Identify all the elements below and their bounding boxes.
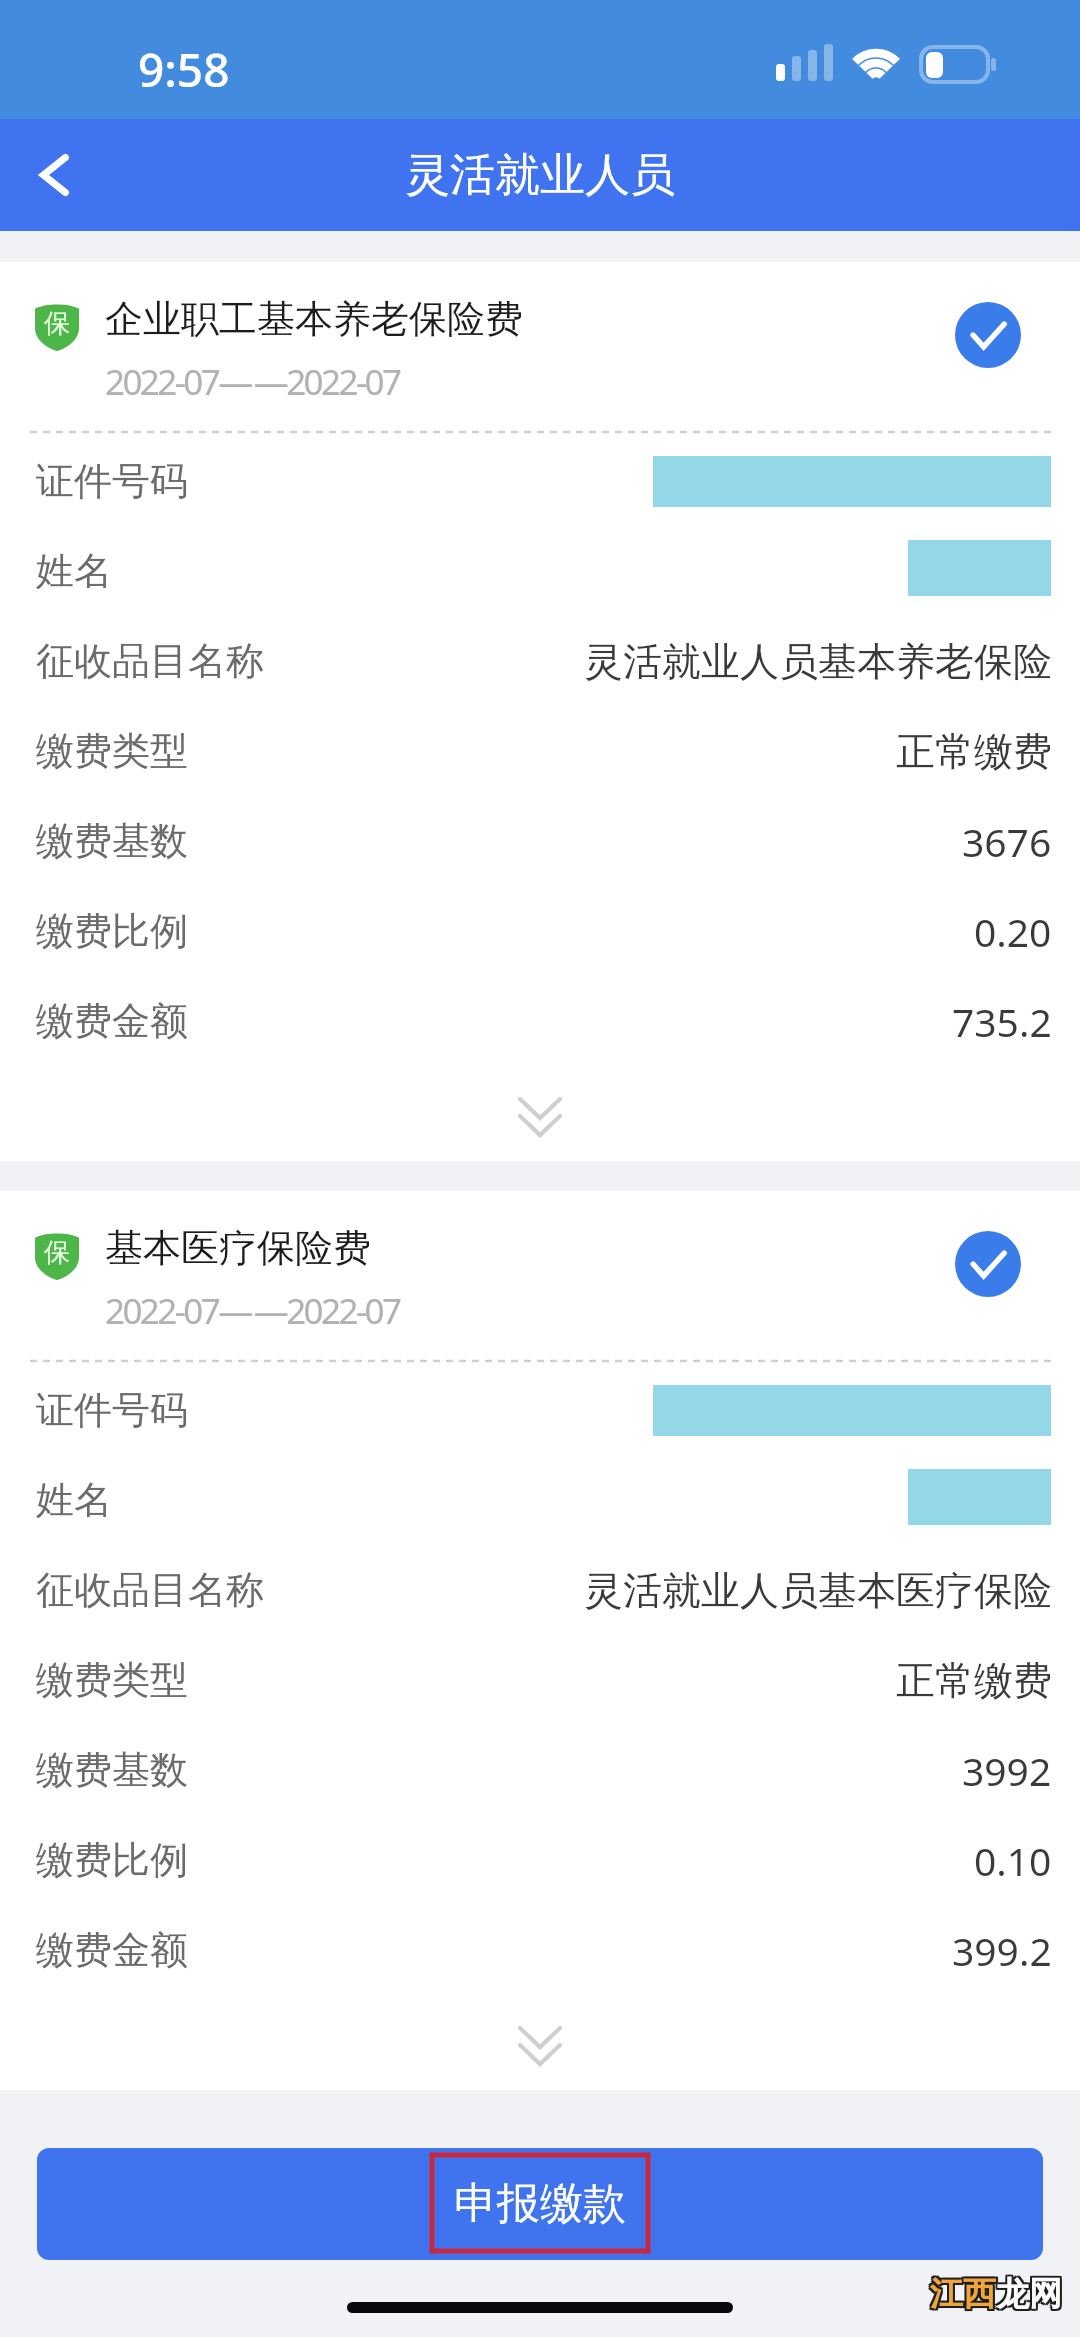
staticText: 735.2: [952, 995, 1052, 1048]
button[interactable]: 缴费比例: [0, 1815, 1080, 1905]
staticText: 申报缴款: [454, 2177, 626, 2231]
staticText: 0.20: [974, 905, 1052, 958]
staticText: 2022-07— —2022-07: [105, 358, 400, 406]
button[interactable]: 姓名: [0, 526, 1080, 616]
button[interactable]: 缴费比例: [0, 886, 1080, 976]
button[interactable]: 缴费基数: [0, 1725, 1080, 1815]
staticText: 3992: [962, 1744, 1052, 1797]
staticText: 征收品目名称: [36, 1566, 264, 1614]
staticText: 江西龙网: [928, 2273, 1060, 2315]
button[interactable]: 征收品目名称: [0, 616, 1080, 706]
staticText: 缴费金额: [36, 997, 188, 1045]
button[interactable]: Selected: [955, 302, 1021, 368]
staticText: 3676: [962, 815, 1052, 868]
staticText: 9:58: [138, 38, 230, 101]
button[interactable]: 征收品目名称: [0, 1545, 1080, 1635]
staticText: 0.10: [974, 1834, 1052, 1887]
staticText: 399.2: [952, 1924, 1052, 1977]
staticText: 缴费基数: [36, 1746, 188, 1794]
button[interactable]: 缴费基数: [0, 796, 1080, 886]
staticText: 龙网: [996, 2273, 1062, 2315]
staticText: 江西: [930, 2273, 996, 2315]
staticText: 2022-07— —2022-07: [105, 1287, 400, 1335]
staticText: 江西龙网: [930, 2275, 1062, 2317]
button[interactable]: 缴费金额: [0, 1905, 1080, 1995]
staticText: 灵活就业人员: [405, 147, 675, 204]
staticText: 证件号码: [36, 1386, 188, 1434]
staticText: 缴费比例: [36, 907, 188, 955]
staticText: 缴费类型: [36, 727, 188, 775]
staticText: 江西龙网: [928, 2271, 1060, 2313]
button[interactable]: 证件号码: [0, 436, 1080, 526]
staticText: 江西龙网: [932, 2273, 1064, 2315]
staticText: 征收品目名称: [36, 637, 264, 685]
button[interactable]: Selected: [955, 1231, 1021, 1297]
staticText: 保: [44, 307, 70, 340]
staticText: 江西龙网: [932, 2271, 1064, 2313]
staticText: 缴费类型: [36, 1656, 188, 1704]
staticText: 江西龙网: [932, 2275, 1064, 2317]
staticText: 企业职工基本养老保险费: [105, 295, 523, 343]
button[interactable]: Expand: [0, 1066, 1080, 1161]
staticText: 缴费基数: [36, 817, 188, 865]
staticText: 缴费比例: [36, 1836, 188, 1884]
button[interactable]: 缴费类型: [0, 1635, 1080, 1725]
staticText: 姓名: [36, 1476, 112, 1524]
staticText: 江西龙网: [930, 2271, 1062, 2313]
button[interactable]: 缴费类型: [0, 706, 1080, 796]
staticText: 证件号码: [36, 457, 188, 505]
button[interactable]: 证件号码: [0, 1365, 1080, 1455]
button[interactable]: Expand: [0, 1995, 1080, 2090]
staticText: 正常缴费: [896, 727, 1052, 776]
staticText: 保: [44, 1236, 70, 1269]
button[interactable]: 缴费金额: [0, 976, 1080, 1066]
staticText: 灵活就业人员基本医疗保险: [584, 1566, 1052, 1615]
staticText: 灵活就业人员基本养老保险: [584, 637, 1052, 686]
button[interactable]: 保: [0, 1191, 1080, 1356]
button[interactable]: 申报缴款: [37, 2148, 1043, 2260]
button[interactable]: 保: [0, 262, 1080, 427]
button[interactable]: 姓名: [0, 1455, 1080, 1545]
staticText: 正常缴费: [896, 1656, 1052, 1705]
staticText: 基本医疗保险费: [105, 1224, 371, 1272]
button[interactable]: Back: [0, 119, 110, 231]
staticText: 江西龙网: [928, 2275, 1060, 2317]
staticText: 姓名: [36, 547, 112, 595]
staticText: 缴费金额: [36, 1926, 188, 1974]
